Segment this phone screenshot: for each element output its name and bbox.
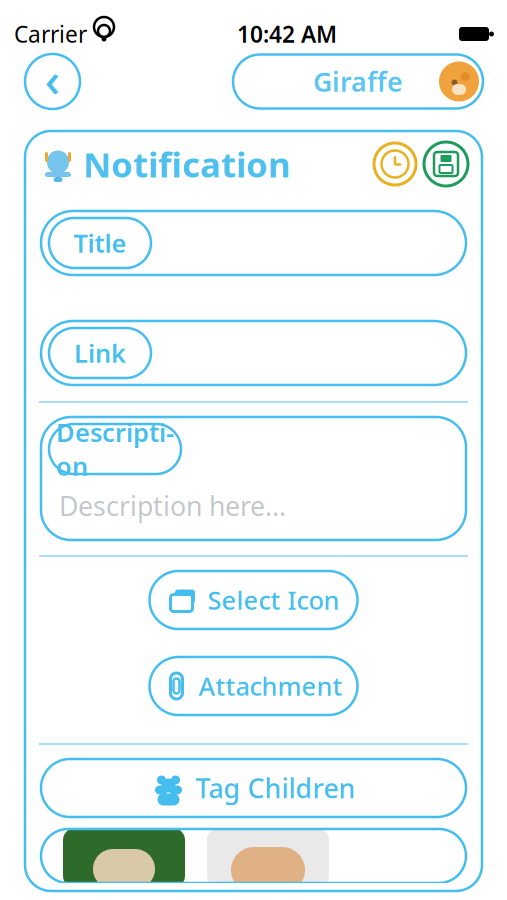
button[interactable]: Tag Children [41, 759, 466, 817]
button[interactable]: Attachment [149, 657, 357, 715]
staticText: ‹ [44, 47, 60, 110]
staticText: Description [56, 415, 174, 483]
button[interactable]: Save [424, 142, 468, 186]
staticText: Carrier [14, 19, 87, 49]
staticText: Select Icon [207, 583, 339, 617]
staticText: Tag Children [195, 770, 355, 806]
button[interactable]: Schedule [374, 143, 416, 185]
staticText: Notification [83, 141, 291, 187]
button[interactable]: Back [25, 54, 80, 109]
staticText: Title [73, 226, 126, 260]
button[interactable]: Select Icon [149, 571, 357, 629]
staticText: Giraffe [313, 64, 403, 99]
button[interactable]: Giraffe [233, 54, 483, 108]
staticText: Description here... [59, 488, 286, 523]
staticText: 10:42 AM [237, 19, 337, 49]
staticText: Attachment [198, 669, 342, 703]
staticText: Link [74, 336, 126, 370]
